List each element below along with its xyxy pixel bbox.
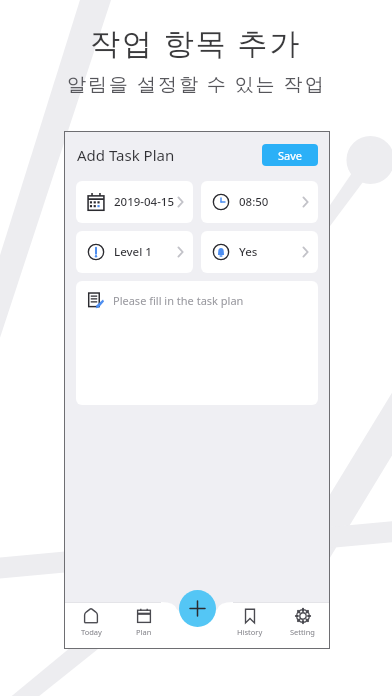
staticText: Add Task Plan: [77, 145, 175, 165]
staticText: 2019-04-15: [114, 194, 175, 210]
staticText: 알림을 설정할 수 있는 작업: [67, 71, 326, 97]
staticText: History: [237, 627, 263, 637]
button[interactable]: Today: [65, 608, 117, 648]
staticText: Level 1: [114, 244, 152, 260]
button[interactable]: Please fill in the task plan: [76, 281, 318, 405]
staticText: Yes: [239, 244, 258, 260]
staticText: Plan: [136, 627, 152, 637]
button[interactable]: Plan: [117, 608, 170, 648]
button[interactable]: 08:50: [201, 181, 318, 223]
staticText: Please fill in the task plan: [113, 293, 244, 308]
staticText: 작업 항목 추가: [90, 22, 302, 63]
button[interactable]: Add task: [179, 590, 216, 627]
staticText: Setting: [290, 627, 315, 637]
button[interactable]: Yes: [201, 231, 318, 273]
button[interactable]: History: [223, 608, 276, 648]
staticText: Save: [278, 148, 303, 163]
staticText: Today: [81, 627, 102, 637]
staticText: 08:50: [239, 194, 269, 210]
button[interactable]: Level 1: [76, 231, 193, 273]
button[interactable]: Setting: [276, 608, 329, 648]
button[interactable]: 2019-04-15: [76, 181, 193, 223]
button[interactable]: Save: [262, 144, 318, 166]
